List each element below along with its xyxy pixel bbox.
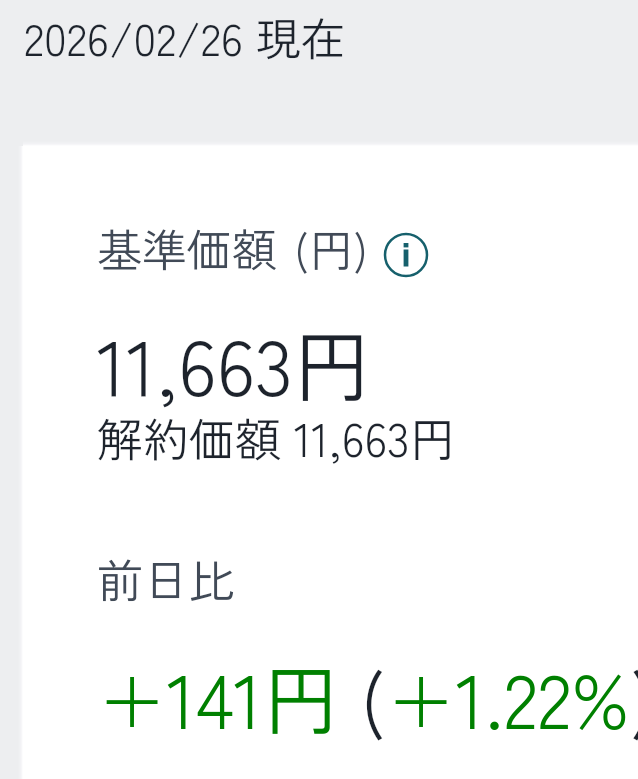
staticText: (円) (294, 216, 369, 280)
button[interactable]: 2026/02/26 現在 (24, 4, 346, 69)
button[interactable]: 基準価額についての説明 (383, 232, 429, 278)
staticText: +141円 (+1.22%) (97, 641, 638, 751)
staticText: 11,663円 (97, 306, 372, 419)
staticText: 基準価額 (97, 215, 278, 280)
staticText: 2026/02/26 現在 (24, 4, 346, 69)
staticText: 解約価額 11,663円 (97, 404, 456, 471)
staticText: 前日比 (97, 545, 235, 612)
